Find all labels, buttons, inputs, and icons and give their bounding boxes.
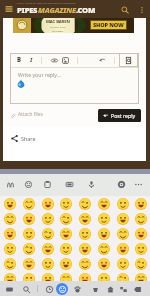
button[interactable]: Emoji — [94, 256, 113, 271]
button[interactable]: Emoji — [75, 211, 94, 226]
staticText: B — [17, 56, 22, 64]
button[interactable]: Emoji — [19, 211, 38, 226]
button[interactable]: Menu — [3, 3, 15, 15]
button[interactable]: Post reply — [98, 109, 141, 122]
button[interactable]: Emoji — [38, 271, 57, 281]
button[interactable]: Search emoji — [19, 282, 33, 296]
button[interactable]: Attach files — [10, 111, 43, 118]
button[interactable]: Emoji — [0, 271, 19, 281]
button[interactable]: Emoji — [131, 241, 150, 256]
button[interactable]: Emoji — [113, 226, 132, 241]
button[interactable]: Emoji — [56, 271, 75, 281]
staticText: SHOP NOW — [93, 21, 124, 29]
button[interactable]: Emoji — [38, 241, 57, 256]
button[interactable]: Emoji — [94, 271, 113, 281]
button[interactable]: Emoji — [113, 271, 132, 281]
button[interactable]: Bold — [14, 53, 24, 67]
button[interactable]: ABC keyboard — [2, 282, 16, 296]
button[interactable]: Emoji — [56, 256, 75, 271]
button[interactable]: Emoji — [131, 226, 150, 241]
button[interactable]: Mac Baren advertisement — [13, 17, 134, 33]
button[interactable]: Emoji — [75, 241, 94, 256]
button[interactable]: Emoji — [19, 271, 38, 281]
button[interactable]: Emoji — [113, 196, 132, 211]
button[interactable]: Share — [11, 135, 36, 142]
button[interactable]: Smileys and people — [55, 282, 69, 296]
button[interactable]: Emoji — [0, 256, 19, 271]
button[interactable]: Emoji — [56, 226, 75, 241]
staticText: Attach files — [18, 111, 43, 118]
staticText: MATURED — [52, 29, 64, 32]
button[interactable]: Emoji — [113, 211, 132, 226]
button[interactable]: Insert image — [60, 53, 70, 67]
button[interactable]: Emoji — [131, 256, 150, 271]
button[interactable]: Activities — [116, 282, 130, 296]
button[interactable]: Clipboard — [40, 177, 54, 191]
button[interactable]: Emoji — [38, 226, 57, 241]
staticText: MAGAZINE — [38, 5, 76, 15]
button[interactable]: Animals and nature — [70, 282, 84, 296]
button[interactable]: More options — [131, 177, 145, 191]
button[interactable]: Emoji — [75, 196, 94, 211]
button[interactable]: Emoji — [19, 226, 38, 241]
button[interactable]: Emoji — [0, 211, 19, 226]
button[interactable]: Emoji — [131, 211, 150, 226]
button[interactable]: Settings — [114, 177, 128, 191]
button[interactable]: Emoji — [94, 196, 113, 211]
button[interactable]: Emoji — [56, 211, 75, 226]
button[interactable]: Emoji — [75, 271, 94, 281]
button[interactable]: Emoji — [0, 196, 19, 211]
button[interactable]: Objects — [130, 282, 144, 296]
staticText: Write your reply... — [18, 71, 61, 78]
button[interactable]: Undo — [97, 53, 107, 67]
button[interactable]: Search — [119, 4, 130, 15]
button[interactable]: Emoji — [94, 241, 113, 256]
button[interactable]: Food and drink — [88, 282, 102, 296]
button[interactable]: Emoji — [113, 241, 132, 256]
button[interactable]: Emoji — [56, 196, 75, 211]
staticText: I — [30, 56, 33, 64]
button[interactable]: Voice input — [84, 177, 98, 191]
button[interactable]: Italic — [26, 53, 36, 67]
button[interactable]: Emoji — [94, 226, 113, 241]
button[interactable]: Emoji — [75, 256, 94, 271]
button[interactable]: Emoji — [38, 211, 57, 226]
button[interactable]: Emoji — [131, 271, 150, 281]
staticText: PIPES — [17, 5, 38, 15]
staticText: MAC BAREN — [46, 19, 70, 25]
button[interactable]: Emoji — [56, 241, 75, 256]
button[interactable]: Emoji — [38, 196, 57, 211]
button[interactable]: Handwriting — [3, 177, 17, 191]
button[interactable]: Preview — [119, 53, 138, 67]
button[interactable]: Emoji — [19, 241, 38, 256]
button[interactable]: Emoji — [94, 211, 113, 226]
button[interactable]: Recently used — [42, 282, 56, 296]
staticText: Post reply — [111, 112, 136, 119]
button[interactable]: Emoji — [131, 196, 150, 211]
button[interactable]: More options — [136, 4, 147, 15]
button[interactable]: Stickers — [21, 177, 35, 191]
staticText: HH OLD DARK — [50, 25, 66, 28]
button[interactable]: Emoji — [0, 241, 19, 256]
button[interactable]: Emoji — [0, 226, 19, 241]
button[interactable]: Insert link — [49, 53, 59, 67]
button[interactable]: Emoji — [75, 226, 94, 241]
staticText: Share — [21, 135, 36, 142]
button[interactable]: Emoji — [38, 256, 57, 271]
button[interactable]: Emoji — [19, 256, 38, 271]
staticText: The #1 Source for Pipes and Pipe Tobacco… — [17, 2, 76, 5]
button[interactable]: GIF — [62, 177, 76, 191]
button[interactable]: Emoji — [19, 196, 38, 211]
button[interactable]: Emoji — [113, 256, 132, 271]
button[interactable]: Travel and places — [103, 282, 117, 296]
staticText: .COM — [76, 5, 95, 15]
